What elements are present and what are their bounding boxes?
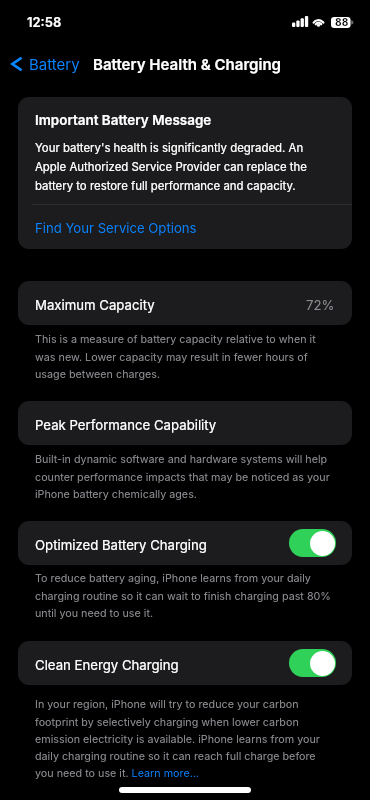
button[interactable]: Maximum Capacity xyxy=(18,281,352,325)
staticText: Battery Health & Charging xyxy=(93,55,282,73)
button[interactable]: Battery xyxy=(5,51,86,77)
staticText: Your battery's health is significantly d… xyxy=(35,141,336,193)
button[interactable]: Toggle setting xyxy=(289,649,336,677)
staticText: 12:58 xyxy=(27,14,62,30)
other: Cellular signal xyxy=(292,16,308,27)
staticText: Clean Energy Charging xyxy=(35,657,179,673)
other: Wi-Fi xyxy=(312,16,325,27)
button[interactable]: Find Your Service Options xyxy=(18,205,352,249)
staticText: Maximum Capacity xyxy=(35,297,155,313)
staticText: Optimized Battery Charging xyxy=(35,537,207,553)
staticText: Find Your Service Options xyxy=(35,220,197,236)
staticText: 88 xyxy=(335,16,349,28)
staticText: To reduce battery aging, iPhone learns f… xyxy=(35,572,335,620)
staticText: Peak Performance Capability xyxy=(35,417,217,433)
button[interactable]: Optimized Battery Charging xyxy=(18,521,352,565)
staticText: 72% xyxy=(306,297,335,313)
staticText: Battery xyxy=(29,55,80,73)
staticText: Important Battery Message xyxy=(35,112,212,128)
staticText: Built-in dynamic software and hardware s… xyxy=(35,453,335,501)
button[interactable]: Clean Energy Charging xyxy=(18,641,352,685)
staticText: In your region, iPhone will try to reduc… xyxy=(35,698,335,780)
button[interactable]: Peak Performance Capability xyxy=(18,401,352,445)
button[interactable]: Toggle setting xyxy=(289,529,336,557)
staticText: This is a measure of battery capacity re… xyxy=(35,333,335,381)
